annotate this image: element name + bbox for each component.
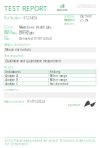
staticText: Delivered 01/01/2024: [19, 37, 52, 40]
staticText: Qualitative and quantitative measurement: [5, 59, 61, 63]
staticText: Testing method :: [64, 15, 77, 22]
staticText: Client: [4, 26, 13, 29]
staticText: Within range: [50, 78, 68, 82]
staticText: Test required :: [4, 54, 25, 58]
staticText: Verify that all data provided are correc…: [4, 139, 95, 146]
staticText: Test Number:: [4, 16, 22, 20]
staticText: Liberty Labs: [19, 31, 34, 35]
staticText: Marylebone Health Labs: [19, 26, 51, 29]
staticText: Status received :: [4, 100, 26, 103]
staticText: Manufacturer: [4, 31, 18, 38]
staticText: Sample amount :: [64, 18, 76, 25]
staticText: Sample: [4, 29, 13, 33]
staticText: Result :: [4, 66, 15, 69]
staticText: 01/01/2024: [27, 100, 45, 103]
staticText: S-0094: [19, 29, 29, 33]
staticText: Analyte C: [5, 82, 18, 86]
staticText: Sample description :: [4, 43, 32, 46]
staticText: Signature :: [67, 103, 82, 107]
staticText: 12 Street, Laboratory Park: [77, 4, 96, 6]
staticText: Analyte B: [5, 78, 18, 82]
staticText: Finding: [50, 70, 61, 74]
staticText: Indications: [5, 70, 20, 74]
staticText: 25 mL: [80, 18, 88, 22]
staticText: Date: [4, 37, 10, 40]
staticText: Mouse ear nodule: [5, 48, 31, 51]
staticText: ISO 9001: [80, 15, 93, 18]
staticText: City, ST 00000 (000) 000-0000: [77, 6, 96, 8]
staticText: Comments :: [4, 88, 20, 91]
staticText: 0123456: [23, 16, 37, 20]
staticText: Analyte A: [5, 74, 18, 78]
staticText: Not detected: [50, 82, 69, 86]
staticText: Within range: [50, 74, 68, 78]
staticText: LABORA: [56, 8, 67, 12]
staticText: TEST REPORT: [4, 4, 47, 13]
